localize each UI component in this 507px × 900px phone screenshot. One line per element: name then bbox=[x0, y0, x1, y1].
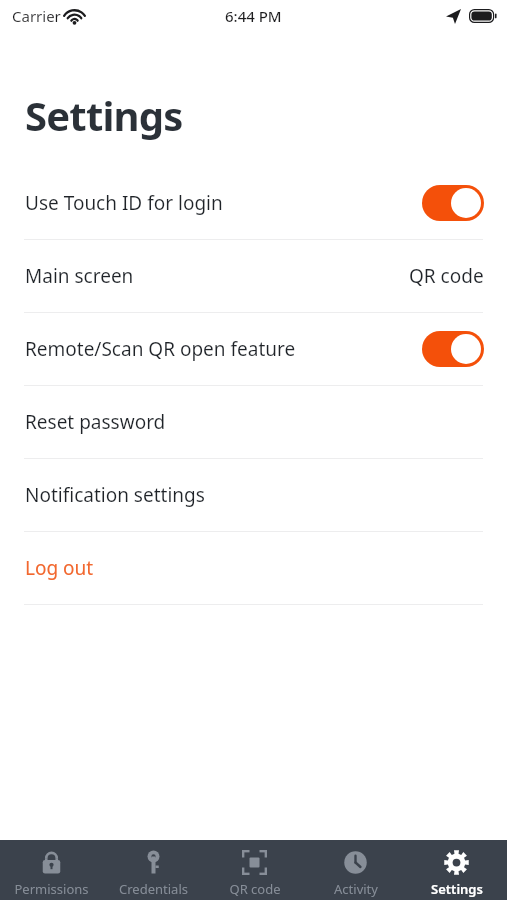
staticText: Credentials bbox=[119, 880, 188, 898]
staticText: 6:44 PM bbox=[225, 6, 282, 26]
button[interactable]: Remote/Scan QR open feature bbox=[0, 313, 507, 385]
button[interactable]: Use Touch ID for login bbox=[0, 167, 507, 239]
staticText: Remote/Scan QR open feature bbox=[25, 336, 422, 362]
staticText: QR code bbox=[229, 880, 281, 898]
staticText: Carrier bbox=[12, 6, 61, 26]
button[interactable]: Credentials bbox=[102, 842, 204, 898]
staticText: Main screen bbox=[25, 263, 409, 289]
button[interactable]: Main screen bbox=[0, 240, 507, 312]
button[interactable]: Settings bbox=[406, 842, 507, 898]
staticText: Log out bbox=[25, 555, 484, 581]
button[interactable]: Reset password bbox=[0, 386, 507, 458]
button[interactable]: Activity bbox=[305, 842, 406, 898]
button[interactable]: Notification settings bbox=[0, 459, 507, 531]
staticText: Notification settings bbox=[25, 482, 484, 508]
staticText: Settings bbox=[25, 88, 183, 142]
staticText: Permissions bbox=[14, 880, 89, 898]
button[interactable]: Permissions bbox=[0, 842, 102, 898]
button[interactable]: Log out bbox=[0, 532, 507, 604]
button[interactable]: Toggle setting bbox=[422, 331, 484, 367]
staticText: Use Touch ID for login bbox=[25, 190, 422, 216]
button[interactable]: Toggle setting bbox=[422, 185, 484, 221]
staticText: Reset password bbox=[25, 409, 484, 435]
staticText: QR code bbox=[409, 263, 484, 289]
staticText: Settings bbox=[431, 880, 483, 898]
staticText: Activity bbox=[334, 880, 378, 898]
button[interactable]: QR code bbox=[204, 842, 305, 898]
